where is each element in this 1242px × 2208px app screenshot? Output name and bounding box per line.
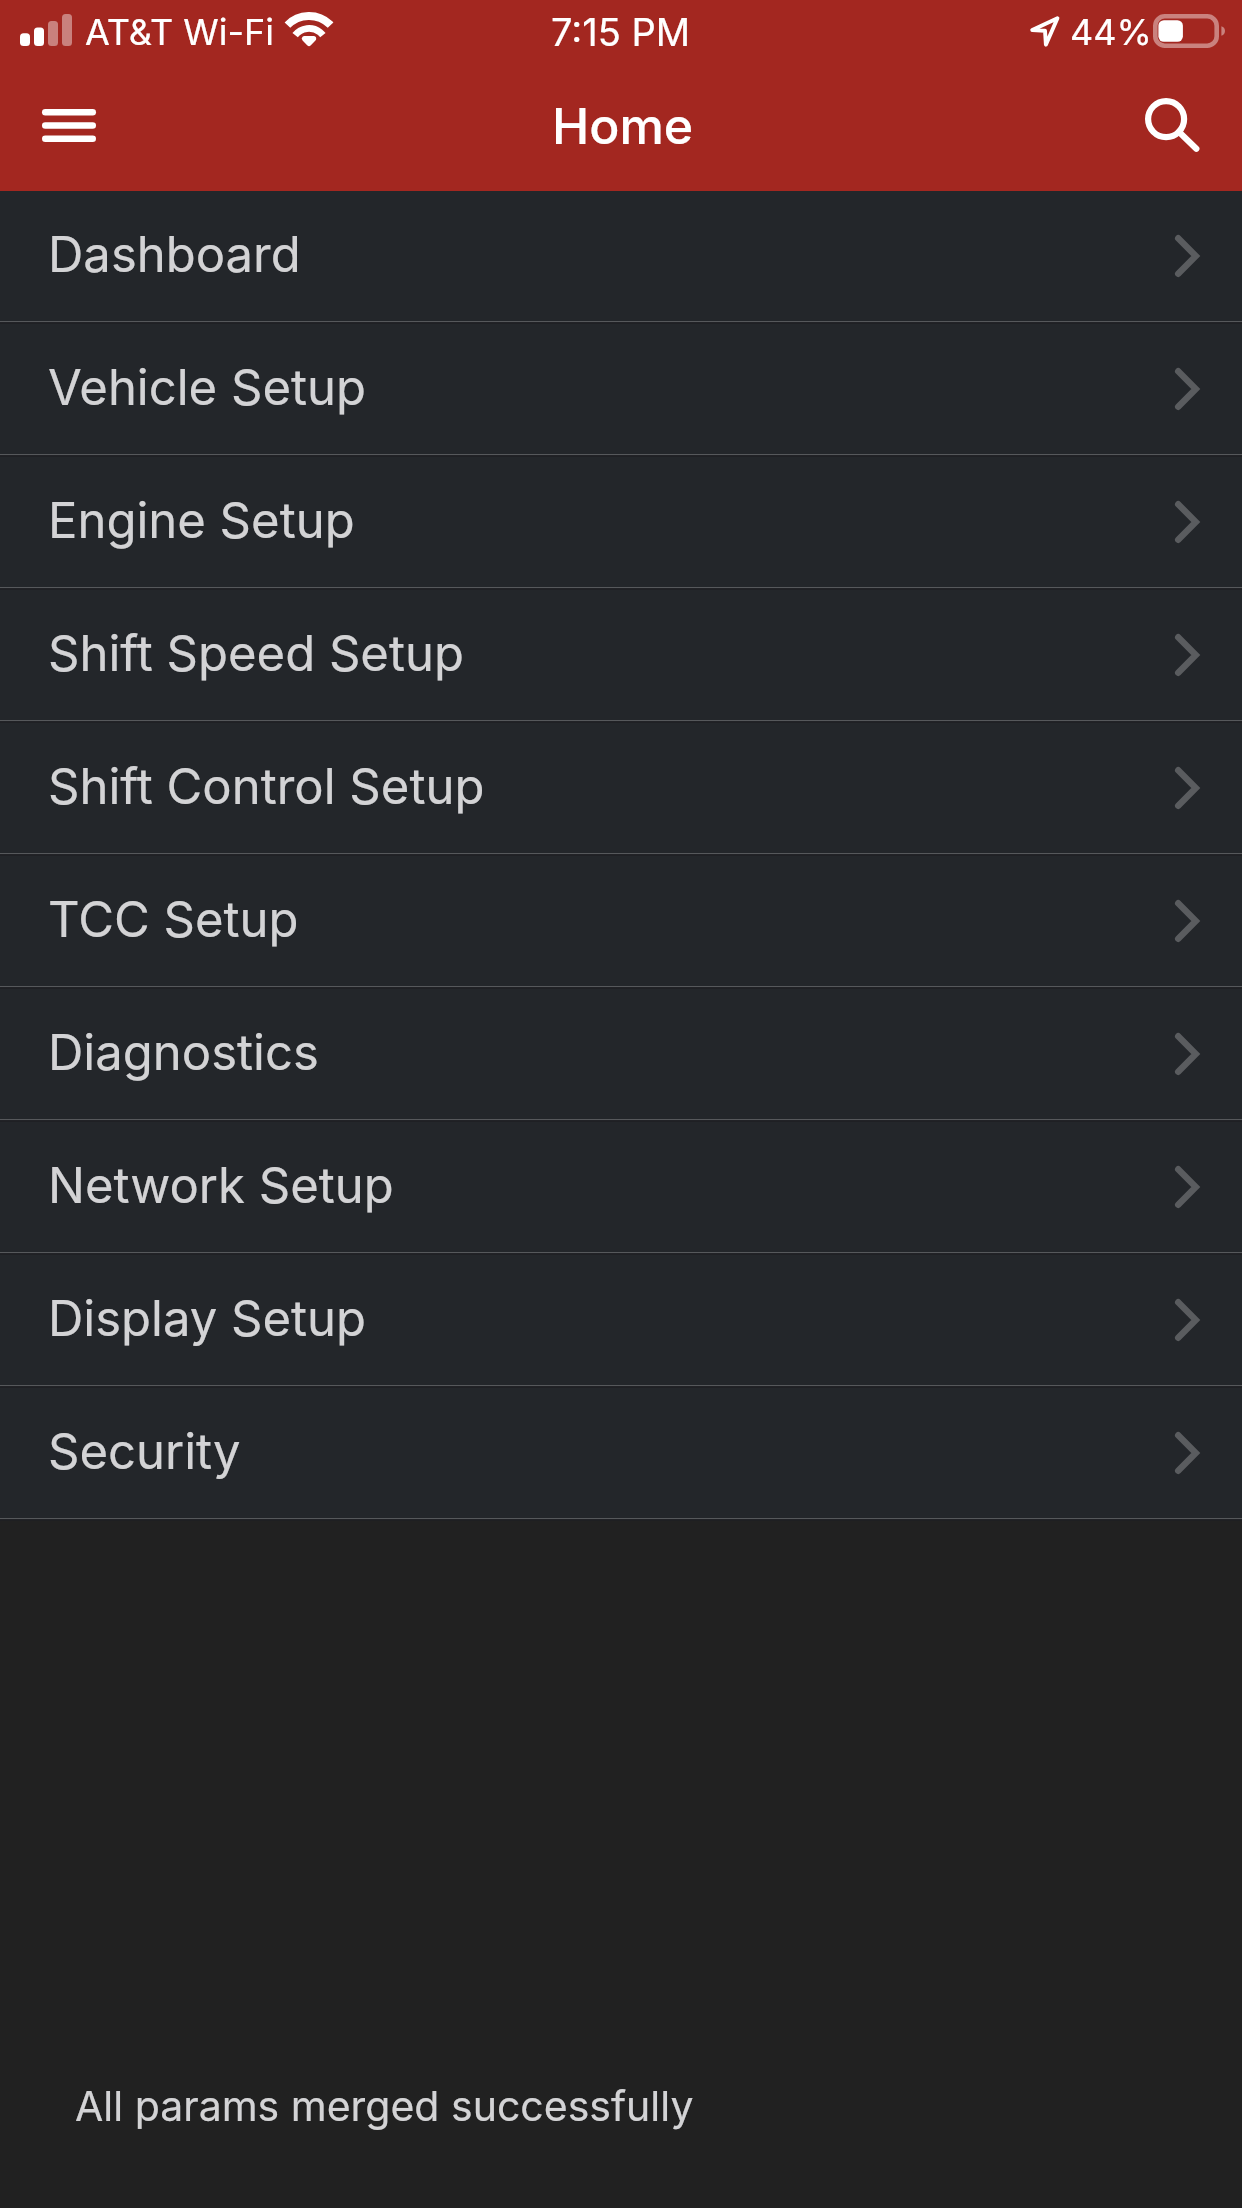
button[interactable]: Vehicle Setup: [0, 323, 1242, 456]
staticText: Shift Control Setup: [48, 757, 485, 816]
button[interactable]: Shift Control Setup: [0, 722, 1242, 855]
staticText: Security: [48, 1422, 241, 1481]
staticText: Display Setup: [48, 1289, 367, 1348]
button[interactable]: TCC Setup: [0, 855, 1242, 988]
button[interactable]: Menu: [9, 65, 129, 186]
button[interactable]: Engine Setup: [0, 456, 1242, 589]
staticText: AT&T Wi-Fi: [85, 10, 275, 54]
button[interactable]: Search: [1113, 65, 1233, 186]
button[interactable]: Shift Speed Setup: [0, 589, 1242, 722]
button[interactable]: Diagnostics: [0, 988, 1242, 1121]
staticText: Dashboard: [48, 225, 301, 284]
staticText: All params merged successfully: [75, 2081, 694, 2131]
staticText: Shift Speed Setup: [48, 624, 464, 683]
button[interactable]: Dashboard: [0, 190, 1242, 323]
staticText: Engine Setup: [48, 491, 355, 550]
staticText: 44%: [1070, 10, 1152, 54]
button[interactable]: Security: [0, 1387, 1242, 1520]
staticText: 7:15 PM: [551, 9, 691, 55]
button[interactable]: Network Setup: [0, 1121, 1242, 1254]
staticText: Network Setup: [48, 1156, 394, 1215]
staticText: Home: [552, 96, 694, 156]
staticText: TCC Setup: [48, 890, 299, 949]
staticText: Diagnostics: [48, 1023, 319, 1082]
button[interactable]: Display Setup: [0, 1254, 1242, 1387]
staticText: Vehicle Setup: [48, 358, 366, 417]
